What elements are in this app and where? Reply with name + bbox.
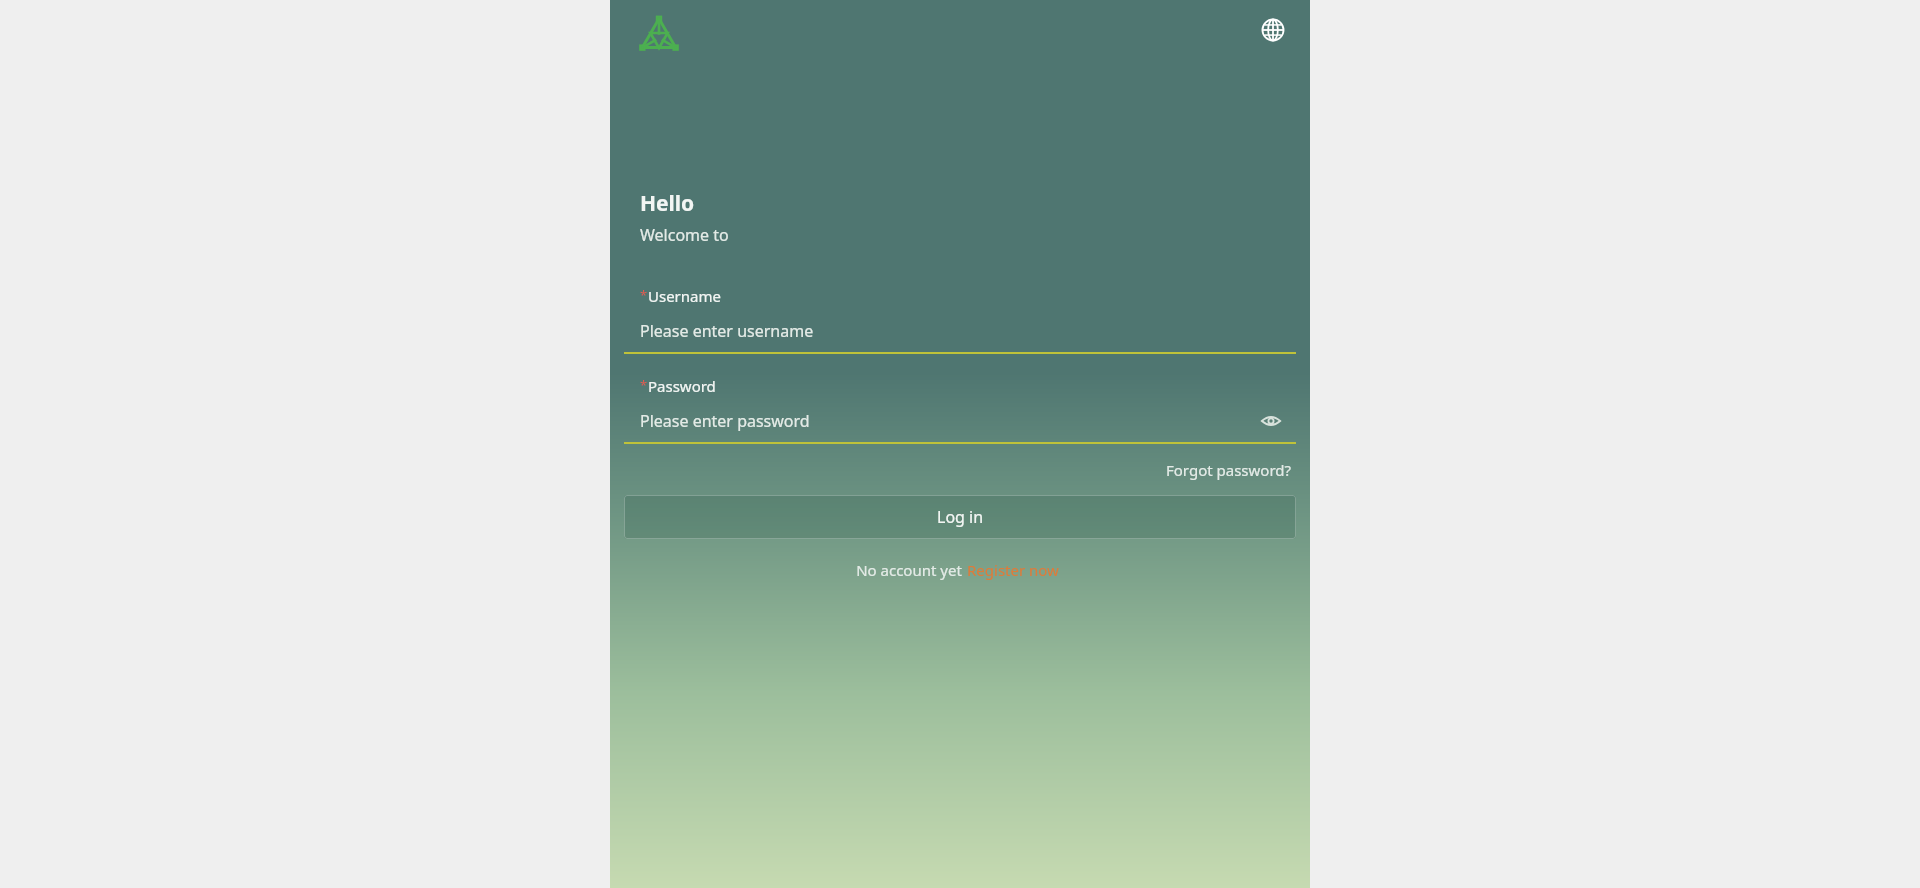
staticText: Username xyxy=(648,286,721,306)
staticText: Log in xyxy=(937,506,984,528)
staticText: Please enter username xyxy=(640,320,814,342)
button[interactable]: App logo xyxy=(635,14,683,62)
staticText: Register now xyxy=(967,560,1059,580)
button[interactable]: Please enter username xyxy=(624,318,1296,354)
staticText: Hello xyxy=(640,189,695,218)
button[interactable]: Register now xyxy=(962,557,1064,583)
staticText: * xyxy=(640,286,648,304)
button[interactable]: Please enter password xyxy=(624,408,1256,434)
staticText: No account yet xyxy=(856,560,962,580)
button[interactable]: Change language xyxy=(1257,14,1289,46)
staticText: Password xyxy=(648,376,716,396)
staticText: Welcome to xyxy=(640,224,729,246)
staticText: * xyxy=(640,376,648,394)
staticText: Please enter password xyxy=(640,410,810,432)
button[interactable]: Log in xyxy=(624,495,1296,539)
staticText: Forgot password? xyxy=(1166,460,1292,480)
button[interactable]: Show password xyxy=(1256,408,1286,434)
button[interactable]: Forgot password? xyxy=(1162,456,1296,484)
